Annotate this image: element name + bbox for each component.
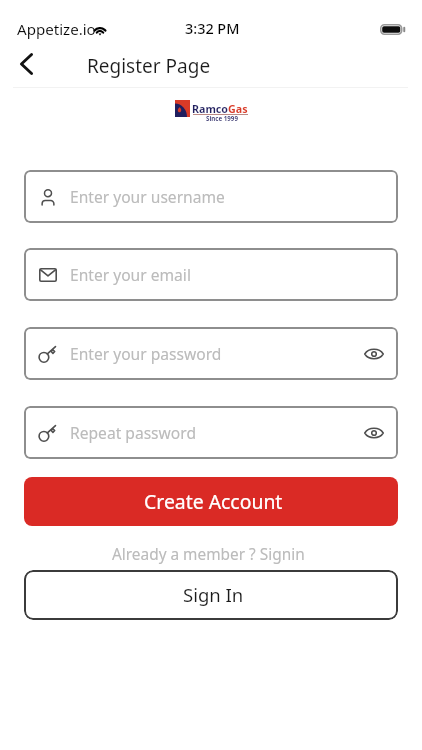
button[interactable]: Enter your email [24,248,398,301]
staticText: Create Account [144,488,283,514]
button[interactable]: Back [8,46,44,82]
button[interactable]: Create Account [24,477,398,526]
button[interactable]: Show password [357,416,391,450]
staticText: Register Page [87,53,211,79]
staticText: Enter your username [70,186,225,207]
staticText: Already a member ? Signin [112,544,305,565]
button[interactable]: Sign In [24,570,398,620]
staticText: Sign In [183,582,244,607]
staticText: Enter your password [70,343,222,364]
staticText: RamcoGas [192,102,248,117]
button[interactable]: Show password [357,337,391,371]
staticText: 3:32 PM [185,19,240,39]
staticText: Repeat password [70,422,196,443]
staticText: Enter your email [70,264,191,285]
button[interactable]: Repeat password [24,406,398,459]
button[interactable]: Enter your username [24,170,398,223]
staticText: Since 1999 [206,114,238,122]
button[interactable]: Enter your password [24,327,398,380]
staticText: Appetize.io [17,19,96,40]
